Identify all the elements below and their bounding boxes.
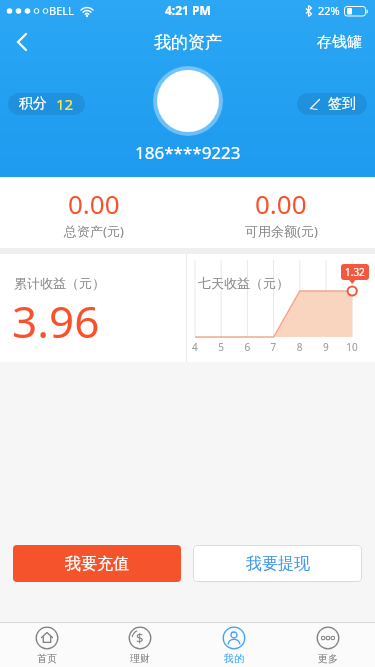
button[interactable] (153, 66, 223, 136)
staticText: 我的资产 (154, 32, 222, 53)
staticText: 0.00 (255, 186, 307, 221)
staticText: 22% (318, 3, 340, 18)
staticText: 186****9223 (135, 141, 241, 164)
staticText: 总资产(元) (64, 222, 124, 240)
staticText: 我的 (224, 652, 244, 665)
button[interactable]: 积分 (8, 93, 85, 115)
staticText: 七天收益（元） (198, 275, 289, 291)
staticText: 累计收益（元） (14, 275, 105, 291)
staticText: 我要提现 (246, 554, 310, 574)
staticText: 首页 (37, 652, 57, 665)
button[interactable]: 0.00 (0, 177, 187, 248)
button[interactable]: 七天收益（元） (187, 254, 375, 362)
staticText: 理财 (130, 652, 150, 665)
staticText: 更多 (318, 652, 338, 665)
button[interactable]: 我要充值 (13, 545, 181, 582)
staticText: $ (136, 629, 144, 647)
button[interactable]: $ (93, 623, 187, 667)
staticText: BELL (49, 3, 74, 18)
staticText: 4:21 PM (165, 2, 211, 18)
button[interactable]: 签到 (297, 93, 367, 115)
button[interactable]: 累计收益（元） (0, 254, 186, 362)
button[interactable]: 更多 (281, 623, 375, 667)
button[interactable] (6, 26, 38, 58)
staticText: 12 (56, 94, 74, 114)
staticText: 签到 (328, 95, 356, 113)
button[interactable]: 首页 (0, 623, 93, 667)
staticText: 可用余额(元) (245, 222, 318, 240)
button[interactable]: 0.00 (187, 177, 375, 248)
staticText: 0.00 (68, 186, 120, 221)
staticText: 存钱罐 (317, 33, 362, 52)
button[interactable]: 存钱罐 (317, 33, 362, 52)
button[interactable]: 我要提现 (193, 545, 362, 582)
staticText: 1.32 (345, 265, 365, 279)
button[interactable]: 我的 (187, 623, 281, 667)
staticText: 我要充值 (65, 554, 129, 574)
staticText: 积分 (19, 95, 47, 113)
staticText: 3.96 (12, 291, 100, 351)
